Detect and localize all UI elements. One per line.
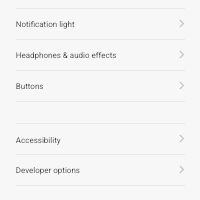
button[interactable]: Buttons xyxy=(0,70,200,101)
other: Open Accessibility xyxy=(177,123,187,154)
button[interactable]: Developer options xyxy=(0,154,200,185)
staticText: Accessibility xyxy=(16,136,61,145)
button[interactable]: Headphones & audio effects xyxy=(0,39,200,70)
other: Open Headphones & audio effects xyxy=(177,39,187,70)
staticText: Notification light xyxy=(16,20,75,29)
other: Open Notification light xyxy=(177,8,187,39)
button[interactable]: Accessibility xyxy=(0,123,200,154)
other: Open Buttons xyxy=(177,70,187,101)
staticText: Developer options xyxy=(16,166,81,175)
staticText: Headphones & audio effects xyxy=(16,51,117,60)
other: Open Developer options xyxy=(177,154,187,185)
staticText: Buttons xyxy=(16,82,44,91)
button[interactable]: Notification light xyxy=(0,8,200,39)
